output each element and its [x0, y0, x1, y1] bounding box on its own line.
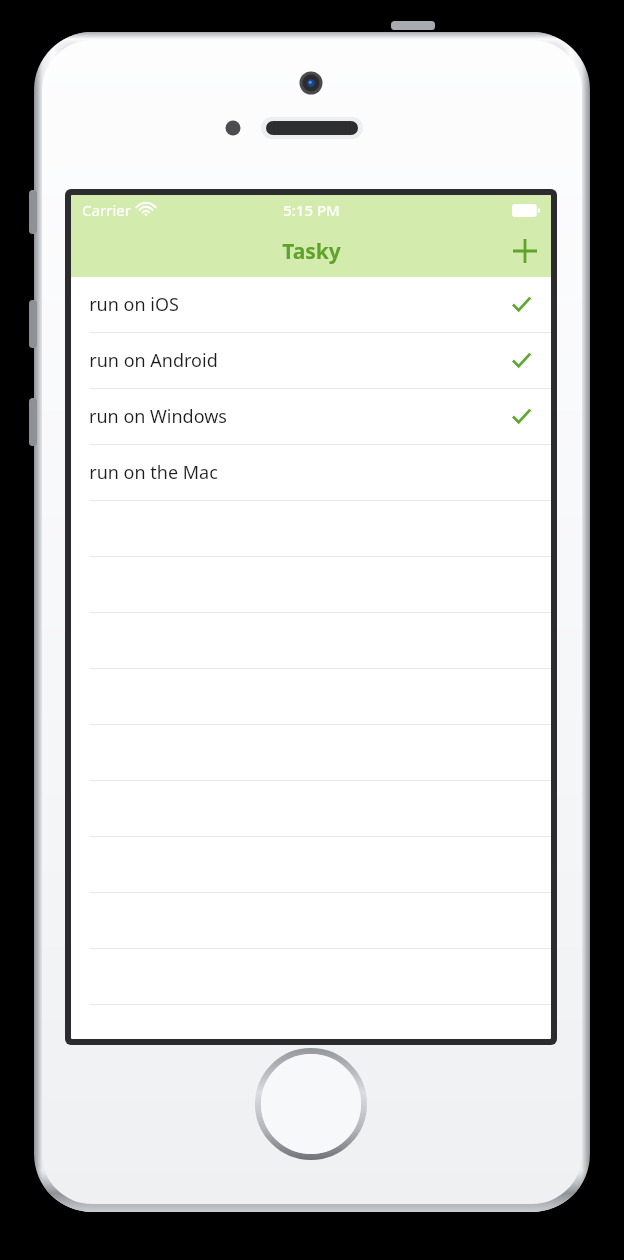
button[interactable]: Add task: [499, 225, 551, 277]
button[interactable]: run on the Mac: [71, 445, 551, 501]
staticText: run on Android: [89, 348, 218, 373]
staticText: run on iOS: [89, 292, 179, 317]
staticText: Carrier: [82, 200, 131, 220]
button[interactable]: run on Android: [71, 333, 551, 389]
button[interactable]: run on Windows: [71, 389, 551, 445]
staticText: run on the Mac: [89, 460, 218, 485]
staticText: run on Windows: [89, 404, 227, 429]
button[interactable]: run on iOS: [71, 277, 551, 333]
staticText: 5:15 PM: [283, 200, 340, 220]
staticText: Tasky: [282, 237, 341, 266]
